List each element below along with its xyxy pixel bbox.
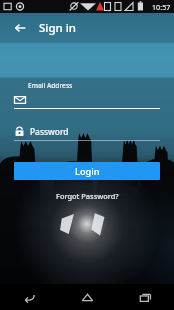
button[interactable]: Home — [58, 284, 116, 310]
button[interactable]: Recent apps — [116, 284, 174, 310]
button[interactable]: Back — [0, 284, 58, 310]
button[interactable] — [14, 94, 160, 106]
button[interactable]: Forgot Password? — [50, 189, 125, 203]
staticText: Login — [75, 165, 100, 178]
button[interactable]: Password — [14, 126, 160, 137]
staticText: Email Address — [28, 81, 73, 90]
staticText: Forgot Password? — [56, 191, 119, 201]
staticText: Password — [30, 126, 69, 137]
staticText: Sign in — [39, 20, 77, 36]
staticText: 10:57 — [152, 2, 171, 12]
button[interactable]: Back — [10, 18, 30, 38]
button[interactable]: Login — [14, 162, 160, 180]
